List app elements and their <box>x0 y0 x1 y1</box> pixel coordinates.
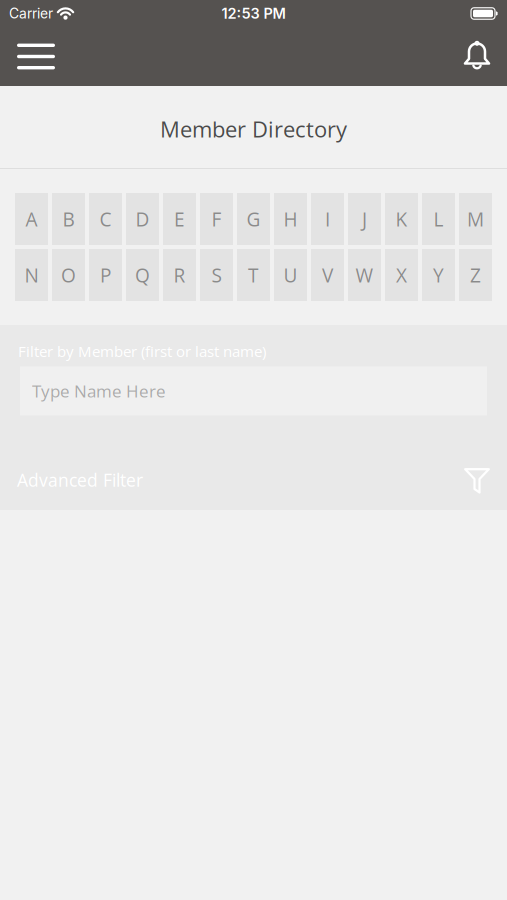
button[interactable]: C <box>89 193 122 245</box>
button[interactable]: Type Name Here <box>20 366 487 415</box>
button[interactable]: U <box>274 249 307 301</box>
staticText: C <box>99 206 111 232</box>
staticText: X <box>396 262 407 288</box>
button[interactable]: Advanced Filter <box>0 468 507 510</box>
staticText: T <box>248 262 259 288</box>
button[interactable]: R <box>163 249 196 301</box>
staticText: Z <box>470 262 481 288</box>
staticText: J <box>362 206 367 232</box>
staticText: B <box>62 206 74 232</box>
staticText: Type Name Here <box>32 379 166 403</box>
button[interactable]: G <box>237 193 270 245</box>
staticText: L <box>433 206 443 232</box>
button[interactable]: L <box>422 193 455 245</box>
button[interactable]: I <box>311 193 344 245</box>
button[interactable]: Y <box>422 249 455 301</box>
staticText: G <box>246 206 260 232</box>
staticText: R <box>173 262 185 288</box>
staticText: Filter by Member (first or last name) <box>18 341 266 361</box>
staticText: Carrier <box>9 5 53 22</box>
button[interactable]: O <box>52 249 85 301</box>
staticText: O <box>61 262 76 288</box>
button[interactable]: N <box>15 249 48 301</box>
button[interactable]: X <box>385 249 418 301</box>
button[interactable]: M <box>459 193 492 245</box>
staticText: N <box>24 262 38 288</box>
button[interactable]: T <box>237 249 270 301</box>
staticText: 12:53 PM <box>221 5 285 22</box>
button[interactable]: S <box>200 249 233 301</box>
staticText: Q <box>135 262 150 288</box>
button[interactable]: E <box>163 193 196 245</box>
button[interactable]: Notifications <box>463 42 507 71</box>
staticText: A <box>25 206 37 232</box>
staticText: M <box>467 206 484 232</box>
button[interactable]: Q <box>126 249 159 301</box>
staticText: P <box>100 262 111 288</box>
button[interactable]: F <box>200 193 233 245</box>
staticText: S <box>211 262 221 288</box>
button[interactable]: W <box>348 249 381 301</box>
button[interactable]: D <box>126 193 159 245</box>
staticText: K <box>395 206 407 232</box>
button[interactable]: A <box>15 193 48 245</box>
staticText: I <box>325 206 330 232</box>
button[interactable]: V <box>311 249 344 301</box>
button[interactable]: Z <box>459 249 492 301</box>
button[interactable]: Menu <box>0 30 55 83</box>
staticText: H <box>283 206 297 232</box>
staticText: F <box>211 206 221 232</box>
button[interactable]: J <box>348 193 381 245</box>
staticText: Advanced Filter <box>17 468 143 492</box>
button[interactable]: P <box>89 249 122 301</box>
button[interactable]: B <box>52 193 85 245</box>
staticText: E <box>174 206 185 232</box>
staticText: V <box>322 262 333 288</box>
button[interactable]: K <box>385 193 418 245</box>
staticText: Member Directory <box>160 114 347 144</box>
staticText: U <box>283 262 297 288</box>
staticText: D <box>135 206 149 232</box>
staticText: Y <box>433 262 444 288</box>
button[interactable]: H <box>274 193 307 245</box>
staticText: W <box>355 262 373 288</box>
